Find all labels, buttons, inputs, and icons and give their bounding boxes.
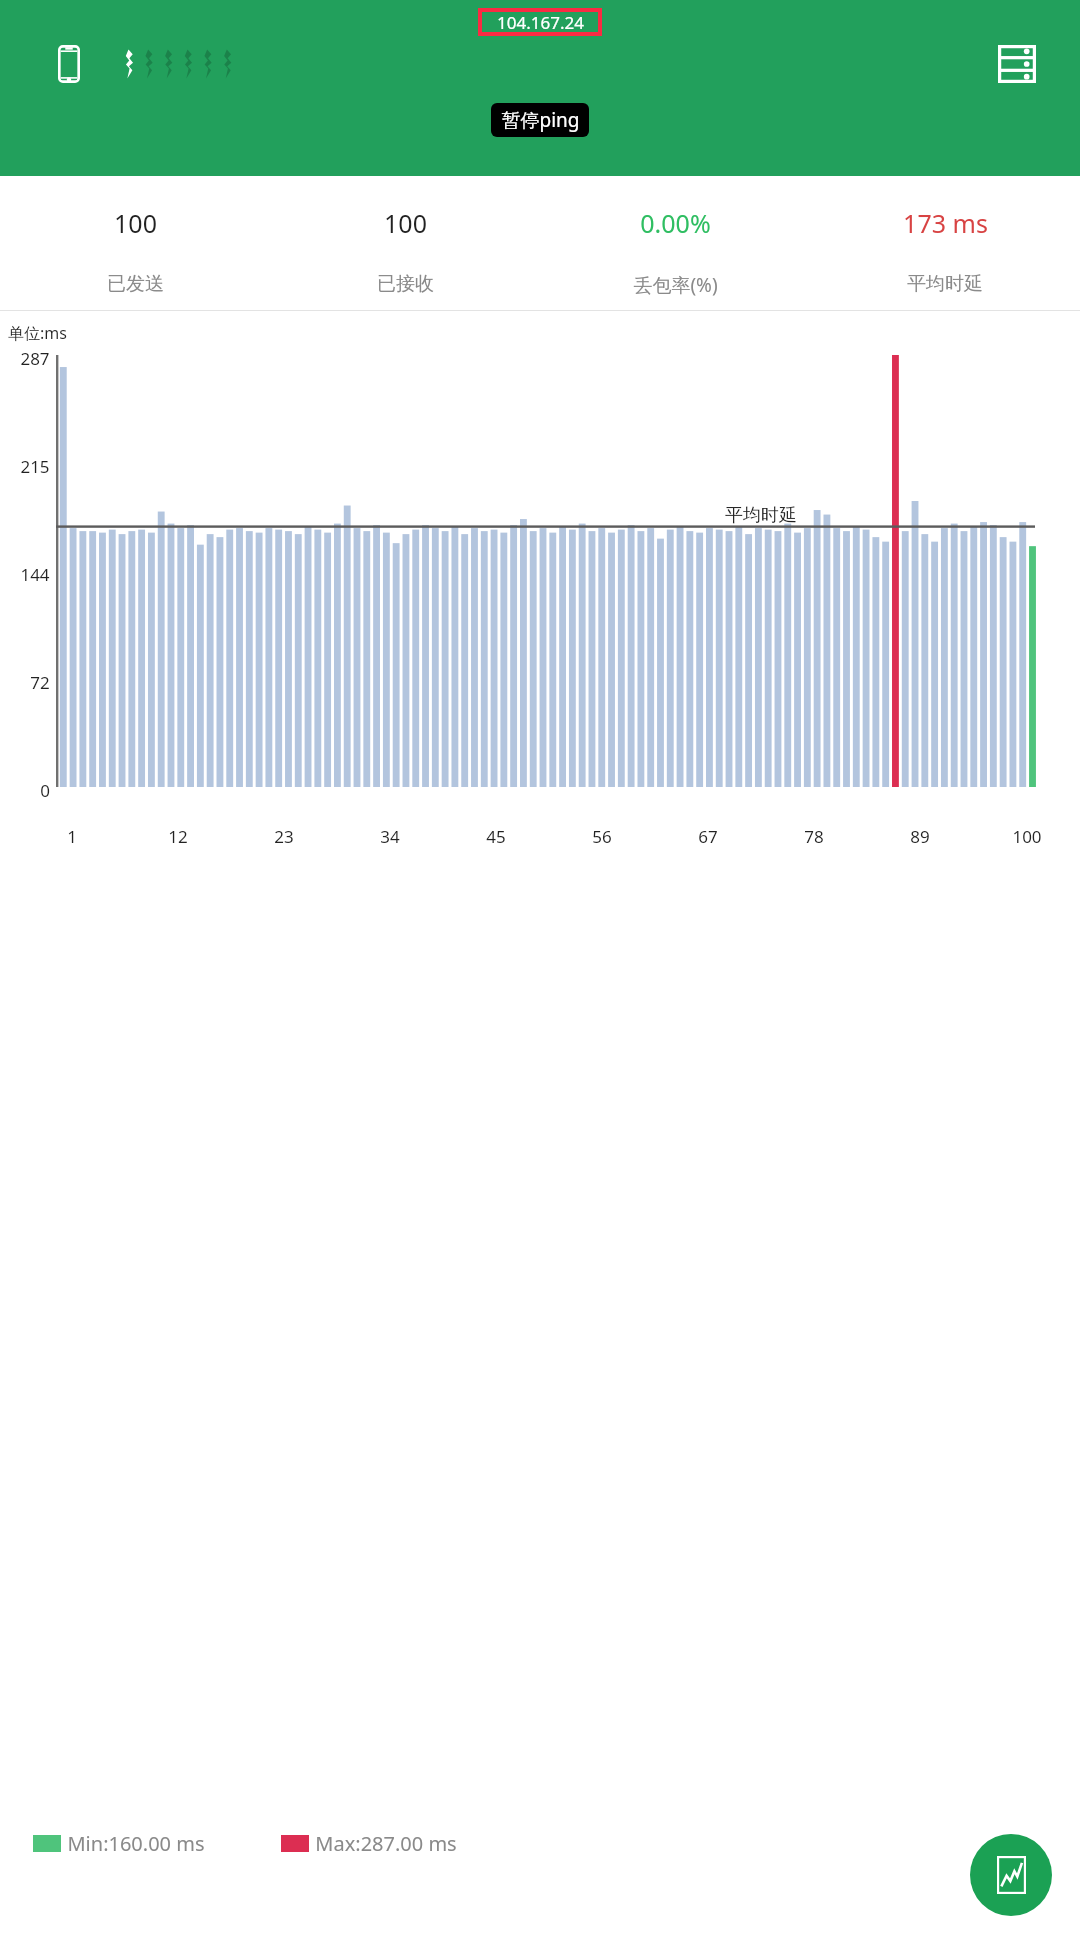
staticText: 72: [30, 671, 50, 694]
staticText: 89: [910, 825, 930, 848]
button[interactable]: 100: [270, 206, 540, 240]
staticText: 100: [384, 206, 427, 240]
other: Device: [58, 45, 80, 83]
button[interactable]: 173 ms: [810, 206, 1080, 240]
button[interactable]: 0.00%: [540, 206, 810, 240]
staticText: 暂停ping: [501, 107, 580, 133]
button[interactable]: Max:287.00 ms: [281, 1830, 457, 1857]
staticText: 100: [1012, 825, 1042, 848]
button[interactable]: Show chart: [970, 1834, 1052, 1916]
staticText: 144: [20, 563, 50, 586]
other: Signal: [120, 46, 238, 82]
staticText: 56: [592, 825, 612, 848]
staticText: 已接收: [377, 272, 434, 296]
staticText: 12: [168, 825, 188, 848]
staticText: 已发送: [107, 272, 164, 296]
button[interactable]: [0, 355, 1080, 855]
button[interactable]: 100: [0, 206, 270, 240]
other: Server: [998, 45, 1036, 83]
button[interactable]: Min:160.00 ms: [33, 1830, 205, 1857]
staticText: 丢包率(%): [633, 272, 718, 298]
staticText: Min:160.00 ms: [67, 1830, 205, 1857]
staticText: 100: [114, 206, 157, 240]
staticText: 34: [380, 825, 400, 848]
staticText: 1: [67, 825, 77, 848]
staticText: 215: [20, 455, 50, 478]
staticText: 67: [698, 825, 718, 848]
staticText: 0.00%: [640, 206, 711, 240]
staticText: 平均时延: [907, 272, 983, 296]
staticText: 78: [804, 825, 824, 848]
staticText: 287: [20, 347, 50, 370]
staticText: 173 ms: [903, 206, 988, 240]
staticText: 104.167.24: [497, 11, 584, 34]
staticText: 平均时延: [725, 504, 797, 527]
button[interactable]: 暂停ping: [491, 103, 589, 137]
staticText: 45: [486, 825, 506, 848]
button[interactable]: 104.167.24: [478, 8, 602, 36]
staticText: 单位:ms: [8, 322, 67, 344]
staticText: 0: [40, 779, 50, 802]
staticText: 23: [274, 825, 294, 848]
staticText: Max:287.00 ms: [315, 1830, 457, 1857]
